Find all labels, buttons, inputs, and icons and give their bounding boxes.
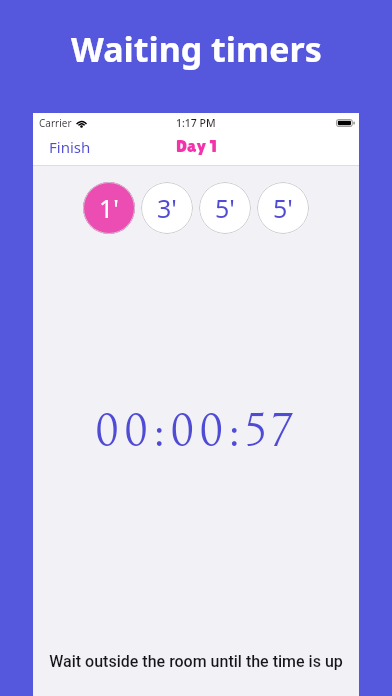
staticText: 5'	[215, 191, 235, 225]
staticText: 00:00:57	[95, 405, 298, 459]
staticText: 3'	[157, 191, 177, 225]
staticText: Wait outside the room until the time is …	[49, 652, 343, 671]
staticText: Day 1	[176, 135, 217, 156]
staticText: 5'	[273, 191, 293, 225]
staticText: 1'	[99, 191, 119, 225]
button[interactable]: 5'	[257, 182, 309, 234]
staticText: Waiting timers	[71, 26, 322, 72]
other: Wi-Fi	[75, 118, 88, 128]
other: Battery	[336, 119, 355, 127]
staticText: Finish	[49, 137, 91, 157]
button[interactable]: 5'	[199, 182, 251, 234]
button[interactable]: 1'	[83, 182, 135, 234]
button[interactable]: 3'	[141, 182, 193, 234]
button[interactable]: Finish	[43, 134, 97, 164]
staticText: 1:17 PM	[176, 116, 216, 130]
staticText: Carrier	[39, 116, 72, 130]
